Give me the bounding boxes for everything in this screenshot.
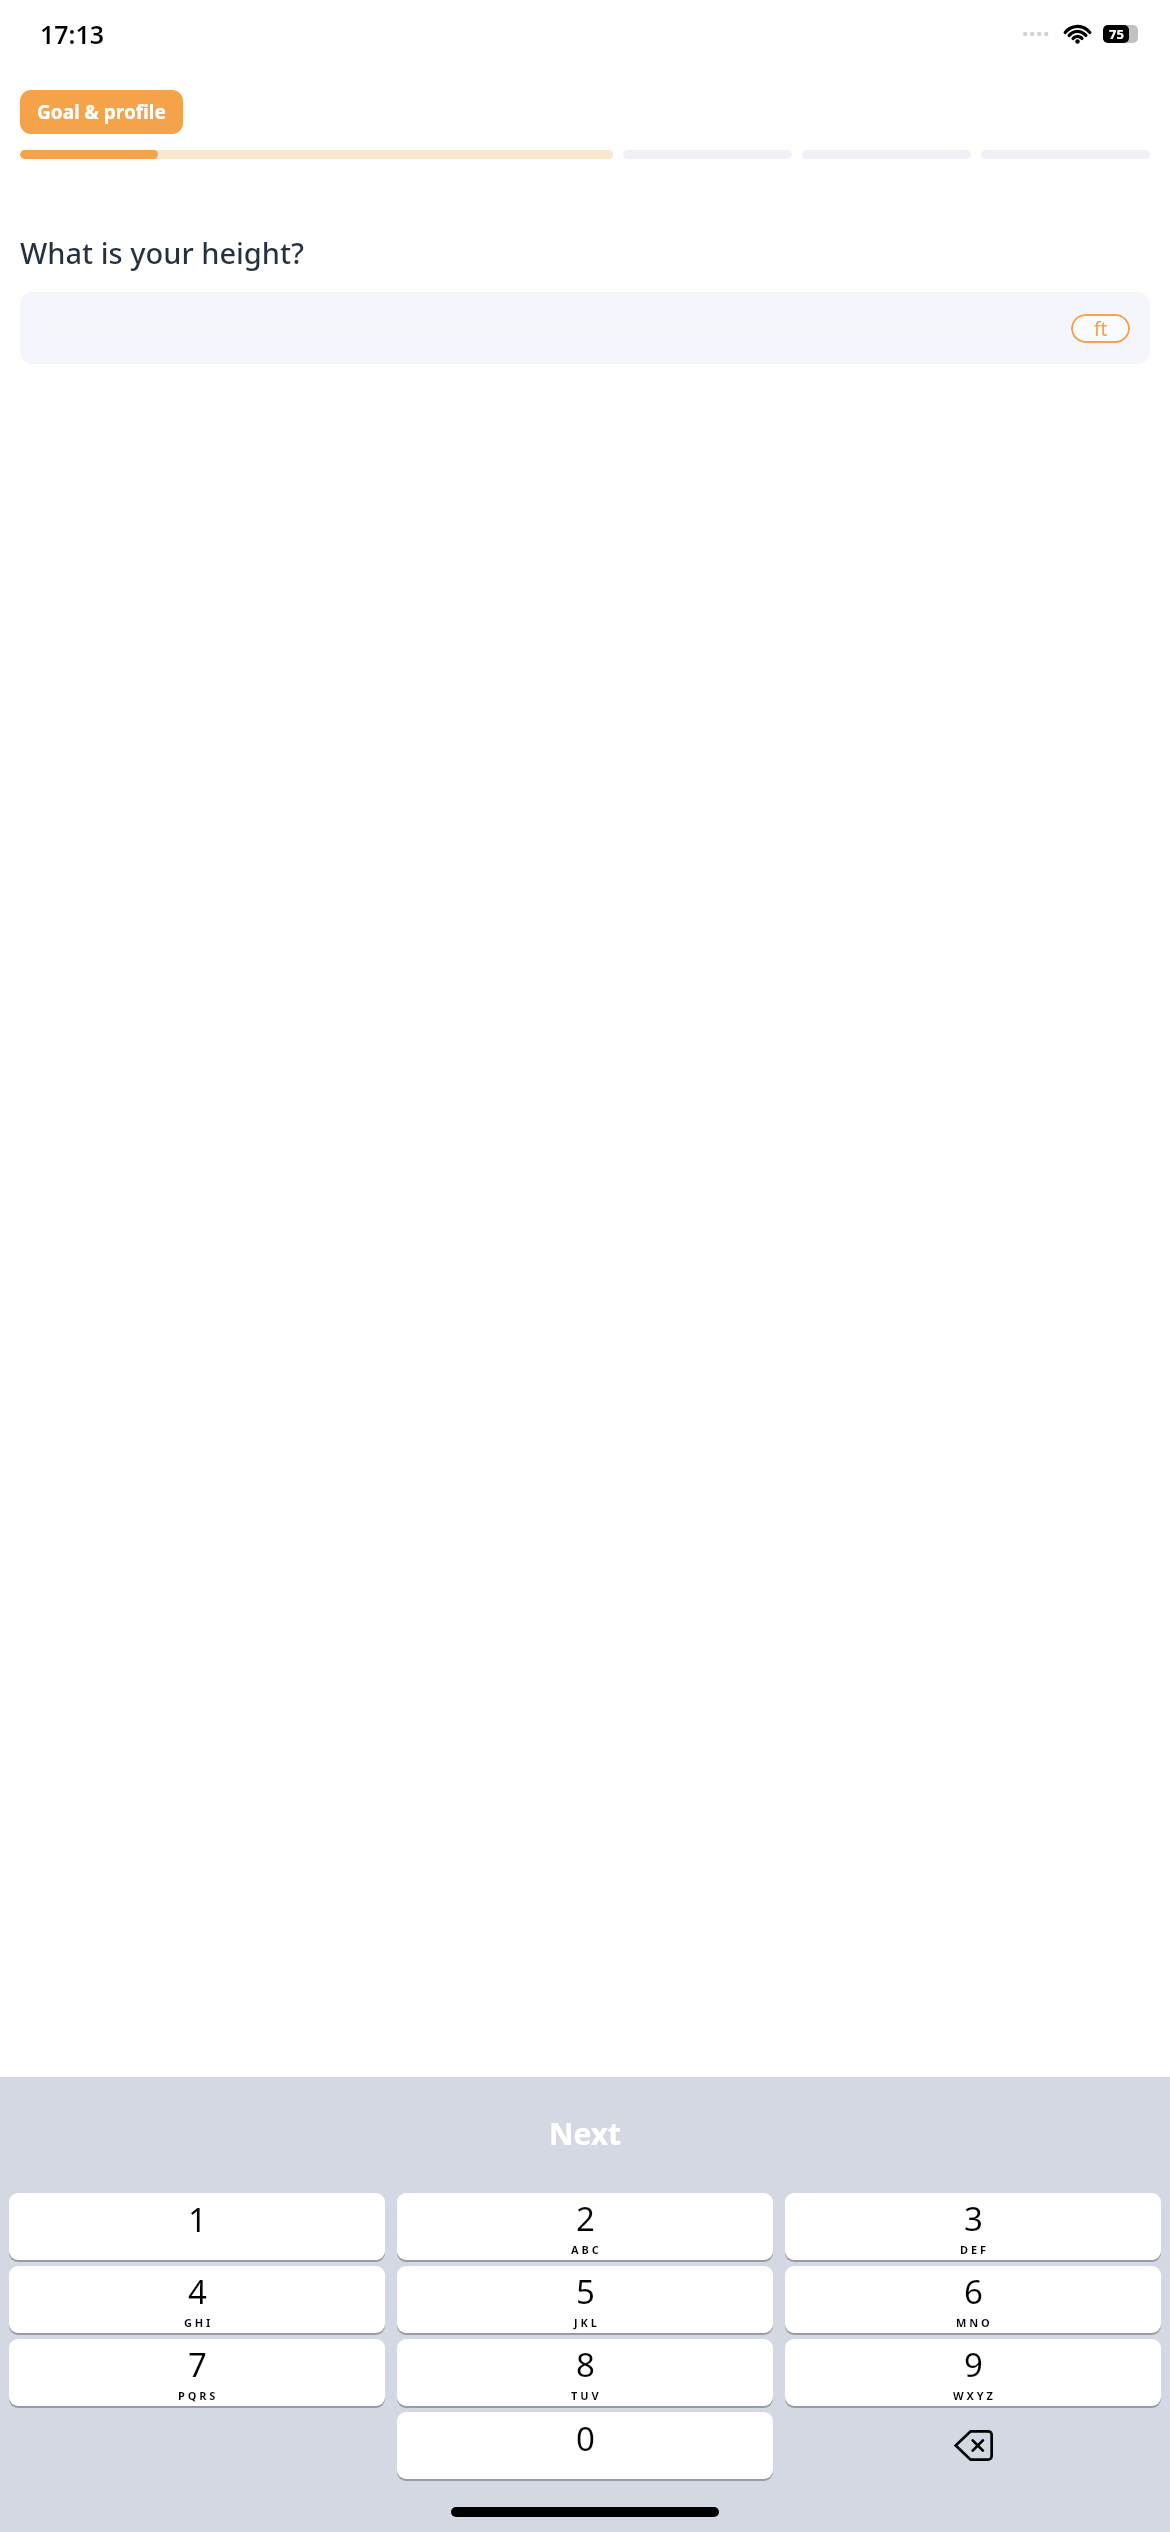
staticText: P Q R S [178, 2388, 216, 2403]
button[interactable]: ft [1071, 314, 1130, 343]
staticText: 75 [1109, 25, 1124, 43]
button[interactable]: 1 [9, 2193, 385, 2260]
button[interactable]: Next [0, 2077, 1170, 2190]
staticText: 1 [188, 2197, 207, 2242]
staticText: G H I [184, 2315, 211, 2330]
staticText: 3 [964, 2196, 983, 2241]
staticText: J K L [574, 2315, 597, 2330]
button[interactable]: 2 [397, 2193, 773, 2260]
staticText: T U V [571, 2388, 599, 2403]
staticText: 4 [188, 2269, 207, 2314]
staticText: D E F [960, 2242, 986, 2257]
staticText: 2 [576, 2196, 595, 2241]
button[interactable]: 3 [785, 2193, 1161, 2260]
button[interactable]: 0 [397, 2412, 773, 2479]
button[interactable]: 5 [397, 2266, 773, 2333]
button[interactable]: 6 [785, 2266, 1161, 2333]
button[interactable]: 8 [397, 2339, 773, 2406]
staticText: 5 [576, 2269, 595, 2314]
staticText: What is your height? [20, 233, 305, 272]
staticText: M N O [956, 2315, 990, 2330]
staticText: Goal & profile [37, 99, 166, 125]
staticText: ft [1094, 316, 1108, 342]
staticText: Next [549, 2113, 622, 2154]
button[interactable]: 4 [9, 2266, 385, 2333]
button[interactable]: 9 [785, 2339, 1161, 2406]
button[interactable]: ft [20, 292, 1150, 364]
staticText: 8 [576, 2342, 595, 2387]
button[interactable]: Goal & profile [20, 90, 183, 134]
staticText: 7 [188, 2342, 207, 2387]
staticText: 0 [576, 2416, 595, 2461]
button[interactable]: 7 [9, 2339, 385, 2406]
staticText: 9 [964, 2342, 983, 2387]
staticText: 17:13 [40, 17, 105, 51]
button[interactable]: Backspace [785, 2412, 1161, 2479]
staticText: 6 [964, 2269, 983, 2314]
staticText: A B C [571, 2242, 599, 2257]
staticText: W X Y Z [953, 2388, 993, 2403]
